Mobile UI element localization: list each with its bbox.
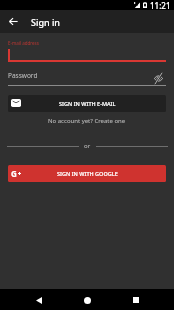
staticText: No account yet? Create one: [48, 117, 126, 125]
staticText: or: [84, 142, 91, 150]
staticText: E-mail address: [8, 40, 39, 46]
button[interactable]: Home: [77, 290, 97, 310]
staticText: SIGN IN WITH E-MAIL: [59, 100, 116, 107]
button[interactable]: Recent apps: [126, 290, 146, 310]
staticText: Sign in: [31, 16, 61, 28]
staticText: G: [11, 168, 17, 179]
staticText: 11:21: [150, 0, 171, 10]
button[interactable]: No account yet? Create one: [0, 115, 174, 126]
staticText: Password: [8, 71, 38, 80]
staticText: SIGN IN WITH GOOGLE: [57, 170, 118, 177]
button[interactable]: Show password: [152, 72, 165, 85]
button[interactable]: Back: [29, 290, 49, 310]
button[interactable]: SIGN IN WITH E-MAIL: [8, 95, 166, 112]
button[interactable]: G: [8, 165, 166, 182]
button[interactable]: Navigate up: [0, 10, 23, 33]
